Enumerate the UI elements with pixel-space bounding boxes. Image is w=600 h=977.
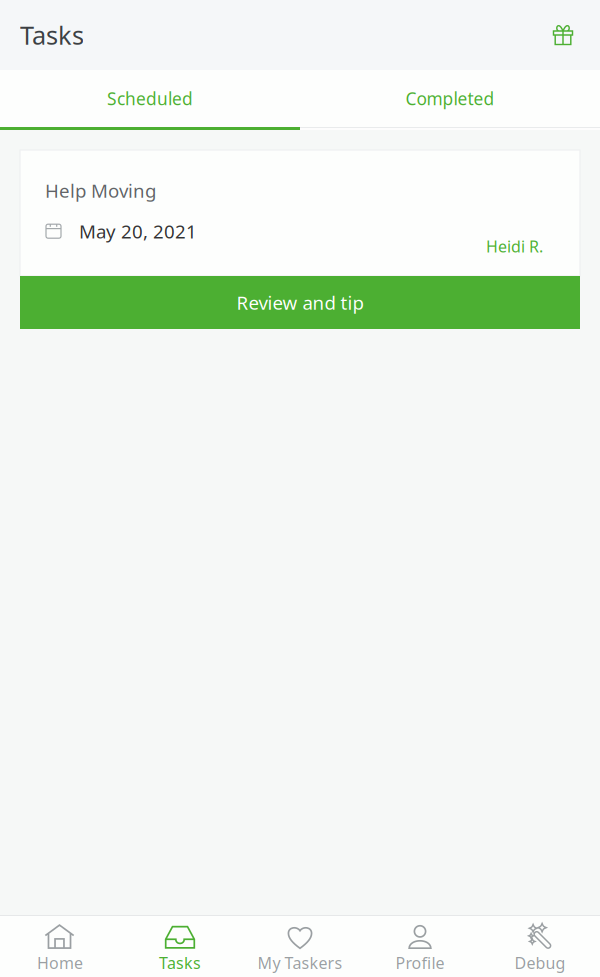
button[interactable]: Help Moving: [20, 150, 580, 276]
button[interactable]: Debug: [480, 915, 600, 977]
button[interactable]: Home: [0, 915, 120, 977]
button[interactable]: Profile: [360, 915, 480, 977]
staticText: Help Moving: [45, 178, 156, 203]
button[interactable]: Rewards: [552, 23, 574, 46]
button[interactable]: Completed: [300, 70, 600, 130]
staticText: Heidi R.: [486, 236, 543, 257]
staticText: Home: [37, 952, 83, 973]
staticText: Tasks: [20, 18, 84, 52]
staticText: May 20, 2021: [79, 219, 197, 244]
staticText: Tasks: [159, 952, 201, 973]
staticText: Review and tip: [236, 290, 363, 315]
staticText: Scheduled: [107, 87, 193, 110]
staticText: My Taskers: [257, 952, 342, 973]
button[interactable]: My Taskers: [240, 915, 360, 977]
button[interactable]: Scheduled: [0, 70, 300, 130]
button[interactable]: Tasks: [120, 915, 240, 977]
staticText: Debug: [514, 952, 565, 973]
button[interactable]: Review and tip: [20, 276, 580, 329]
staticText: Profile: [395, 952, 444, 973]
staticText: Completed: [405, 87, 494, 110]
